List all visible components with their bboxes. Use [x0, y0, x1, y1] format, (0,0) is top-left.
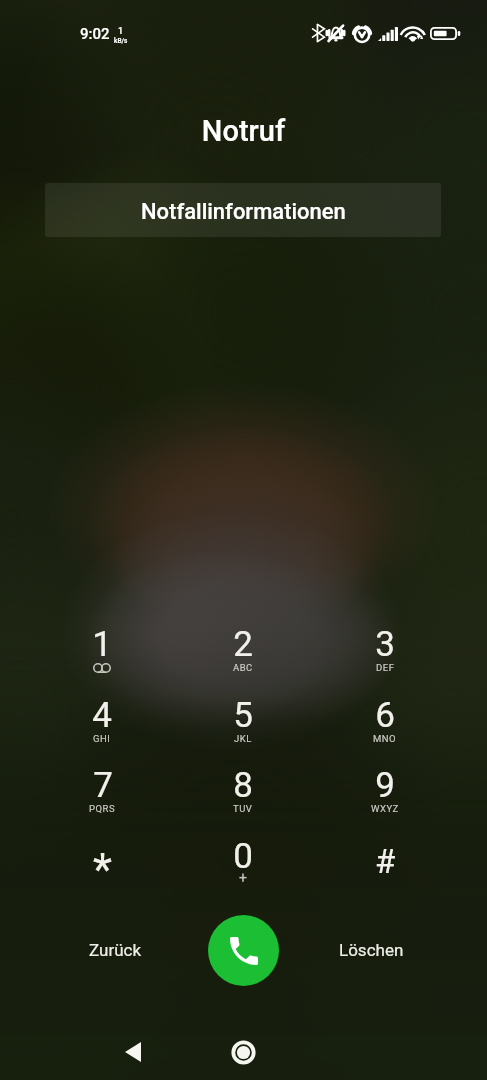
- staticText: 5: [233, 695, 253, 736]
- button[interactable]: 5: [183, 695, 303, 763]
- staticText: Zurück: [89, 940, 142, 960]
- staticText: Notfallinformationen: [141, 199, 346, 225]
- staticText: 6: [375, 695, 395, 736]
- button[interactable]: Notfallinformationen: [45, 183, 441, 237]
- staticText: +: [239, 870, 247, 886]
- staticText: 9:02: [80, 25, 110, 43]
- staticText: DEF: [376, 662, 395, 673]
- staticText: 9: [375, 765, 395, 806]
- button[interactable]: Anrufen: [208, 915, 279, 986]
- staticText: TUV: [233, 803, 253, 814]
- button[interactable]: 0: [183, 836, 303, 904]
- staticText: kB/s: [114, 37, 128, 45]
- staticText: #: [375, 842, 396, 881]
- staticText: JKL: [234, 733, 252, 744]
- button[interactable]: Home: [220, 1030, 266, 1074]
- button[interactable]: 3: [325, 624, 445, 692]
- button[interactable]: Back: [110, 1030, 156, 1074]
- button[interactable]: 6: [325, 695, 445, 763]
- button[interactable]: 8: [183, 765, 303, 833]
- staticText: Löschen: [339, 940, 404, 960]
- button[interactable]: 9: [325, 765, 445, 833]
- button[interactable]: #: [325, 836, 445, 904]
- button[interactable]: 2: [183, 624, 303, 692]
- staticText: WXYZ: [371, 803, 399, 814]
- staticText: 0: [233, 836, 253, 877]
- button[interactable]: 1: [42, 624, 162, 692]
- staticText: *: [93, 844, 112, 896]
- staticText: 3: [375, 624, 395, 665]
- staticText: 1: [92, 624, 112, 665]
- staticText: 8: [233, 765, 253, 806]
- staticText: 2: [233, 624, 253, 665]
- staticText: 4: [92, 695, 112, 736]
- button[interactable]: 4: [42, 695, 162, 763]
- staticText: PQRS: [89, 803, 116, 814]
- staticText: GHI: [93, 733, 111, 744]
- button[interactable]: Zurück: [55, 920, 175, 980]
- staticText: 1: [118, 26, 124, 37]
- button[interactable]: Löschen: [311, 920, 431, 980]
- staticText: Notruf: [0, 114, 487, 148]
- staticText: 7: [93, 765, 113, 806]
- button[interactable]: 7: [42, 765, 162, 833]
- staticText: MNO: [373, 733, 397, 744]
- button[interactable]: *: [42, 836, 162, 904]
- staticText: ABC: [233, 662, 253, 673]
